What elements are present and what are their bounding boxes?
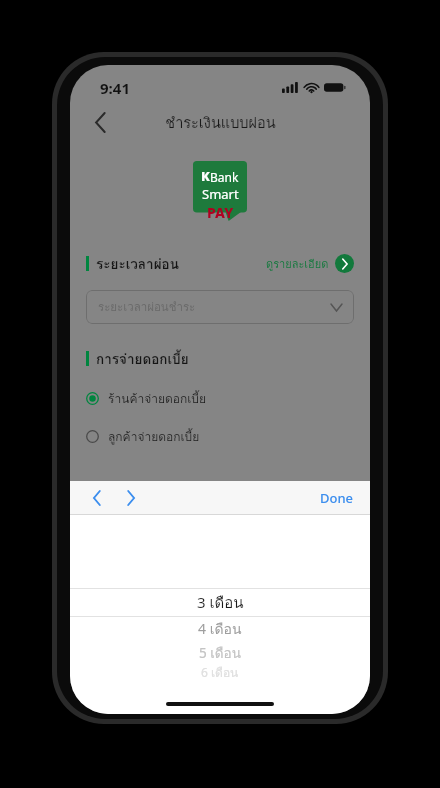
staticText: ดูรายละเอียด — [266, 255, 329, 272]
button[interactable]: 5 เดือน — [70, 641, 370, 663]
button[interactable]: ระยะเวลาผ่อนชำระ — [86, 290, 354, 324]
staticText: 4 เดือน — [198, 618, 242, 640]
staticText: 9:41 — [100, 78, 130, 98]
staticText: 6 เดือน — [201, 663, 239, 679]
staticText: ชำระเงินแบบผ่อน — [165, 111, 276, 134]
button[interactable]: 6 เดือน — [70, 663, 370, 679]
button[interactable]: Next — [118, 483, 144, 513]
button[interactable]: ร้านค้าจ่ายดอกเบี้ย — [70, 387, 370, 410]
staticText: ลูกค้าจ่ายดอกเบี้ย — [108, 427, 200, 446]
staticText: Bank — [210, 169, 239, 185]
button[interactable]: ดูรายละเอียด — [266, 254, 354, 273]
staticText: ระยะเวลาผ่อน — [96, 253, 179, 274]
button[interactable]: Back — [80, 104, 120, 140]
staticText: Smart — [202, 185, 239, 203]
button[interactable]: ลูกค้าจ่ายดอกเบี้ย — [70, 425, 370, 448]
staticText: การจ่ายดอกเบี้ย — [96, 348, 189, 369]
staticText: K — [201, 167, 210, 185]
button[interactable]: Previous — [84, 483, 110, 513]
staticText: 3 เดือน — [197, 591, 244, 615]
button[interactable]: Done — [304, 481, 370, 514]
staticText: ร้านค้าจ่ายดอกเบี้ย — [108, 389, 206, 408]
staticText: 5 เดือน — [199, 642, 241, 663]
button[interactable]: 4 เดือน — [70, 617, 370, 641]
button[interactable]: 3 เดือน — [70, 589, 370, 616]
staticText: Done — [320, 489, 354, 507]
staticText: ระยะเวลาผ่อนชำระ — [98, 298, 196, 316]
staticText: PAY — [207, 203, 234, 221]
